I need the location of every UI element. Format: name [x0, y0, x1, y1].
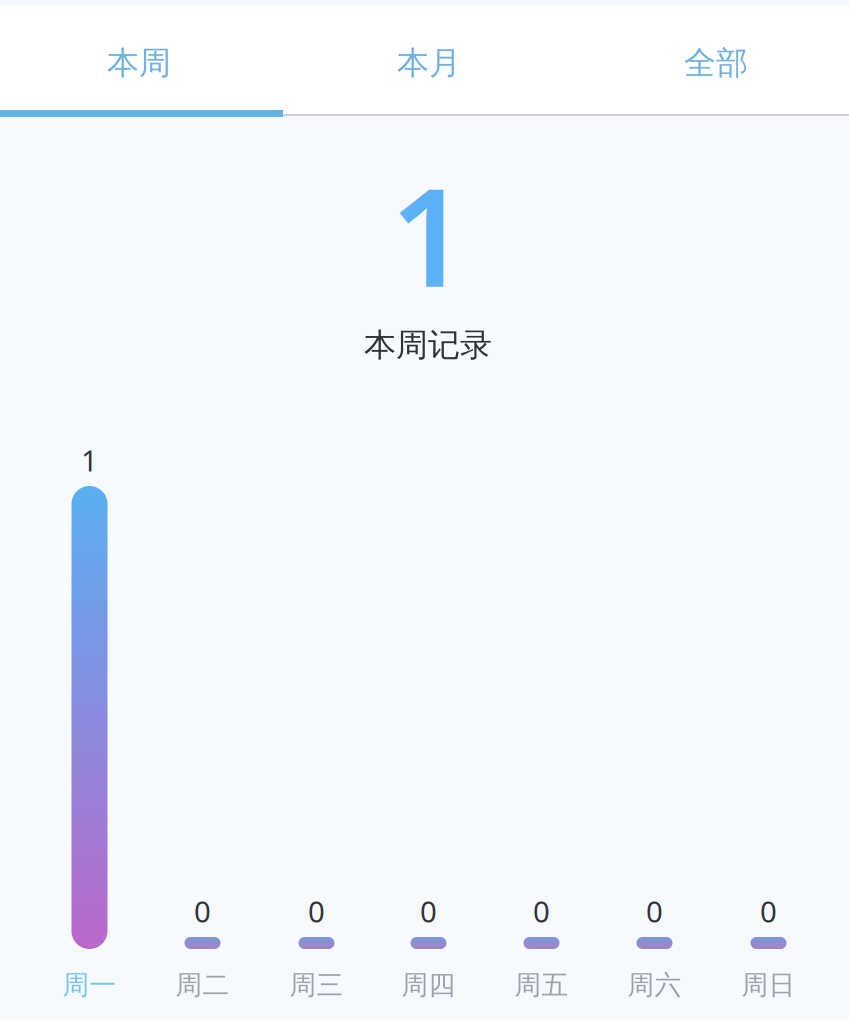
staticText: 0 — [308, 891, 325, 930]
staticText: 周二 — [175, 969, 229, 1001]
staticText: 本月 — [397, 43, 461, 83]
staticText: 本周记录 — [364, 325, 492, 365]
staticText: 0 — [194, 891, 211, 930]
staticText: 周六 — [627, 969, 681, 1001]
staticText: 周三 — [289, 969, 343, 1001]
button[interactable]: 本周 — [0, 8, 280, 118]
staticText: 全部 — [684, 43, 748, 83]
staticText: 周四 — [401, 969, 455, 1001]
staticText: 0 — [646, 891, 663, 930]
staticText: 周五 — [514, 969, 568, 1001]
staticText: 0 — [760, 891, 777, 930]
staticText: 0 — [420, 891, 437, 930]
staticText: 1 — [390, 144, 468, 324]
staticText: 周一 — [62, 969, 116, 1001]
button[interactable]: 全部 — [574, 8, 849, 118]
staticText: 本周 — [107, 43, 171, 83]
staticText: 0 — [533, 891, 550, 930]
button[interactable]: 本月 — [287, 8, 570, 118]
staticText: 1 — [81, 440, 98, 479]
staticText: 周日 — [741, 969, 795, 1001]
